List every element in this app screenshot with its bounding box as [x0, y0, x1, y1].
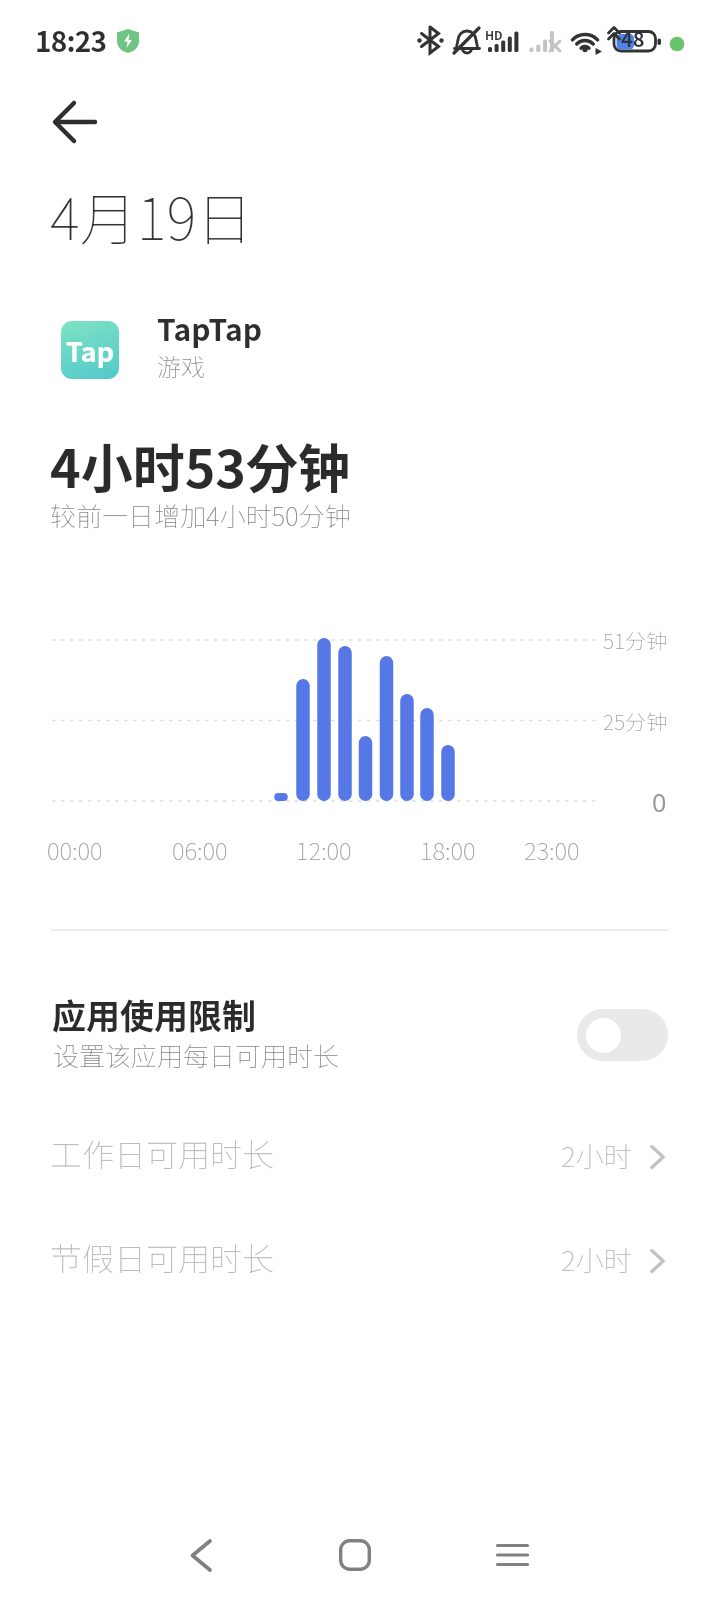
- staticText: 节假日可用时长: [50, 1234, 275, 1280]
- staticText: 25分钟: [603, 706, 667, 736]
- staticText: 设置该应用每日可用时长: [53, 1036, 340, 1074]
- staticText: 游戏: [157, 348, 205, 383]
- staticText: 48: [621, 24, 645, 53]
- staticText: 00:00: [47, 832, 103, 867]
- staticText: 06:00: [172, 832, 228, 867]
- staticText: 12:00: [296, 832, 352, 867]
- staticText: TapTap: [157, 306, 263, 349]
- button[interactable]: [577, 1009, 668, 1061]
- staticText: 18:00: [420, 832, 476, 867]
- staticText: 18:23: [35, 20, 107, 61]
- button[interactable]: 工作日可用时长: [0, 1130, 720, 1190]
- staticText: 4小时53分钟: [50, 428, 351, 503]
- staticText: Tap: [66, 331, 115, 370]
- button[interactable]: 节假日可用时长: [0, 1234, 720, 1294]
- staticText: 2小时: [561, 1135, 632, 1176]
- staticText: 4月19日: [50, 174, 254, 257]
- staticText: 23:00: [524, 832, 580, 867]
- staticText: 51分钟: [603, 625, 667, 655]
- button[interactable]: [40, 90, 110, 154]
- staticText: 0: [652, 785, 667, 819]
- button[interactable]: [285, 1515, 425, 1595]
- staticText: 较前一日增加4小时50分钟: [50, 496, 351, 534]
- staticText: 工作日可用时长: [50, 1130, 275, 1176]
- button[interactable]: [40, 306, 460, 396]
- staticText: HD: [485, 26, 503, 43]
- staticText: 2小时: [561, 1239, 632, 1280]
- staticText: 应用使用限制: [52, 990, 256, 1039]
- button[interactable]: [442, 1515, 582, 1595]
- button[interactable]: [130, 1515, 270, 1595]
